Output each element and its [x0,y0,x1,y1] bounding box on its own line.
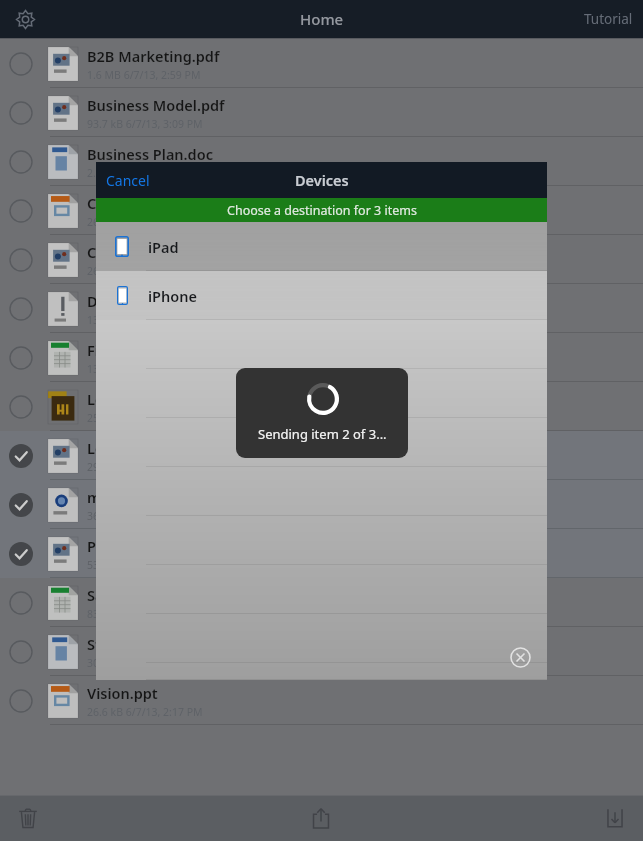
staticText: 26.6 kB 6/7/13, 2:17 PM [87,705,203,719]
staticText: 29.9 kB 6/7/13, 2:58 PM [87,460,203,474]
staticText: 93.7 kB 6/7/13, 3:09 PM [87,117,203,131]
button[interactable]: Business Model.pdf [0,88,643,137]
button[interactable]: Share [299,796,343,840]
staticText: Home [300,9,344,29]
staticText: 25.5 kB 6/7/13, 2:55 PM [87,411,203,425]
staticText: Logo.ai [87,389,139,409]
staticText: Company.pdf [87,242,181,262]
staticText: 13.1 kB 6/7/13, 2:53 PM [87,362,203,376]
staticText: Business Plan.doc [87,144,213,164]
staticText: Data.zip [87,291,145,311]
button[interactable]: iPad [96,222,547,271]
staticText: iPhone [148,286,197,306]
button[interactable]: Company.ppt [0,186,643,235]
button[interactable]: Logos.pdf [0,431,643,480]
staticText: Logos.pdf [87,438,157,458]
staticText: movie.mov [87,487,165,507]
button[interactable]: Vision.ppt [0,676,643,725]
button[interactable]: Structure.doc [0,627,643,676]
button[interactable]: Data.zip [0,284,643,333]
button[interactable]: B2B Marketing.pdf [0,39,643,88]
staticText: 53.2 kB 6/7/13, 3:04 PM [87,558,203,572]
button[interactable]: Tutorial [584,10,633,28]
button[interactable]: movie.mov [0,480,643,529]
button[interactable]: Settings [8,2,42,36]
button[interactable]: iPhone [96,271,547,320]
staticText: iPad [148,237,179,257]
staticText: Devices [295,170,349,190]
button[interactable]: Business Plan.doc [0,137,643,186]
button[interactable]: Download [593,796,637,840]
staticText: 1.6 MB 6/7/13, 2:59 PM [87,68,201,82]
button[interactable]: Company.pdf [0,235,643,284]
button[interactable]: Logo.ai [0,382,643,431]
button[interactable]: Close [503,640,537,674]
button[interactable]: Presentation.pdf [0,529,643,578]
staticText: Company.ppt [87,193,182,213]
staticText: Vision.ppt [87,683,158,703]
staticText: Sending item 2 of 3... [258,425,387,443]
staticText: 26.6 kB 6/7/13, 2:44 PM [87,215,203,229]
button[interactable]: Cancel [106,171,150,190]
staticText: Finance.xls [87,340,166,360]
staticText: 36.6 MB 6/7/13, 3:02 PM [87,509,207,523]
staticText: B2B Marketing.pdf [87,46,220,66]
staticText: 83.1 kB 6/7/13, 3:06 PM [87,607,203,621]
staticText: Business Model.pdf [87,95,225,115]
staticText: Structure.doc [87,634,183,654]
staticText: 2.5 MB 6/7/13, 3:01 PM [87,166,201,180]
button[interactable]: Finance.xls [0,333,643,382]
staticText: Cancel [106,171,150,190]
staticText: Tutorial [584,10,633,28]
staticText: Presentation.pdf [87,536,206,556]
staticText: Choose a destination for 3 items [227,202,417,219]
staticText: Sales.xls [87,585,147,605]
staticText: 13.4 kB 6/7/13, 2:51 PM [87,313,203,327]
button[interactable]: Sales.xls [0,578,643,627]
staticText: 30.4 kB 6/7/13, 3:08 PM [87,656,203,670]
staticText: 26.6 kB 6/7/13, 2:48 PM [87,264,203,278]
button[interactable]: Delete [6,796,50,840]
